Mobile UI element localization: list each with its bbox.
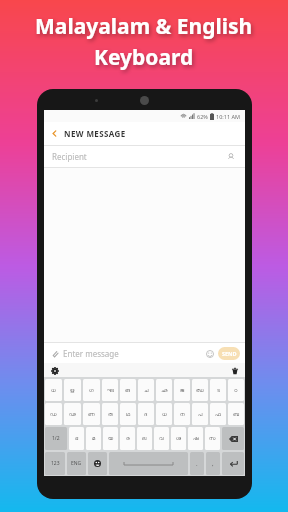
staticText: വ — [159, 436, 164, 441]
button[interactable]: ത — [102, 403, 118, 425]
staticText: ഠ — [234, 388, 238, 393]
button[interactable]: Attach — [49, 348, 60, 359]
staticText: 62% — [197, 113, 208, 120]
staticText: , — [212, 460, 214, 468]
staticText: ണ — [88, 412, 95, 417]
button[interactable]: ട — [210, 379, 226, 401]
staticText: ത — [108, 412, 113, 417]
button[interactable]: ന — [174, 403, 190, 425]
staticText: Enter message — [63, 348, 119, 359]
staticText: ഷ — [193, 436, 199, 441]
staticText: ദ — [144, 412, 148, 417]
staticText: ഋ — [70, 388, 75, 393]
staticText: ബ — [233, 412, 240, 417]
button[interactable]: ര — [120, 427, 135, 450]
button[interactable]: ഡ — [45, 403, 62, 425]
staticText: ല — [142, 436, 147, 441]
button[interactable]: ഘ — [102, 379, 118, 401]
staticText: ച — [144, 388, 149, 393]
staticText: ന — [180, 412, 185, 417]
staticText: ശ — [176, 436, 182, 441]
button[interactable]: Space — [109, 452, 188, 475]
button[interactable]: ണ — [83, 403, 100, 425]
button[interactable]: മ — [86, 427, 101, 450]
staticText: ENG — [71, 460, 82, 467]
button[interactable]: ധ — [156, 403, 172, 425]
button[interactable]: ഗ — [83, 379, 100, 401]
staticText: ഘ — [107, 388, 114, 393]
staticText: 123 — [51, 460, 60, 467]
button[interactable]: ബ — [228, 403, 244, 425]
button[interactable]: SEND — [218, 347, 240, 360]
staticText: . — [196, 460, 198, 468]
staticText: ഝ — [196, 388, 204, 393]
button[interactable]: ശ — [171, 427, 186, 450]
button[interactable]: Back — [44, 122, 64, 145]
button[interactable]: ENG — [67, 452, 86, 475]
button[interactable]: പ — [192, 403, 208, 425]
staticText: യ — [108, 436, 114, 441]
staticText: NEW MESSAGE — [64, 128, 126, 139]
staticText: ധ — [162, 412, 167, 417]
button[interactable]: സ — [205, 427, 220, 450]
button[interactable]: ഛ — [156, 379, 172, 401]
staticText: ജ — [180, 388, 185, 393]
button[interactable]: Recipient — [44, 146, 245, 167]
button[interactable]: 1/2 — [45, 427, 67, 450]
button[interactable]: ഋ — [64, 379, 81, 401]
button[interactable]: ച — [138, 379, 154, 401]
button[interactable]: ഫ — [210, 403, 226, 425]
button[interactable]: Choose contact — [225, 151, 237, 163]
button[interactable]: Delete — [229, 365, 240, 376]
staticText: ര — [126, 436, 130, 441]
staticText: Malayalam & English — [35, 12, 253, 41]
button[interactable]: ധ — [45, 379, 62, 401]
staticText: Recipient — [52, 151, 87, 162]
button[interactable]: ങ — [120, 379, 136, 401]
button[interactable]: ഢ — [64, 403, 81, 425]
button[interactable]: , — [206, 452, 220, 475]
staticText: 10:11 AM — [216, 113, 240, 120]
staticText: ഫ — [215, 412, 221, 417]
button[interactable]: Emoji — [204, 348, 215, 359]
button[interactable]: ഭ — [69, 427, 84, 450]
staticText: മ — [92, 436, 96, 441]
button[interactable]: ല — [137, 427, 152, 450]
button[interactable]: വ — [154, 427, 169, 450]
button[interactable]: ജ — [174, 379, 190, 401]
staticText: ഛ — [161, 388, 168, 393]
button[interactable]: ദ — [138, 403, 154, 425]
button[interactable]: ഷ — [188, 427, 203, 450]
staticText: ധ — [51, 388, 56, 393]
staticText: ഭ — [75, 436, 79, 441]
staticText: 1/2 — [52, 435, 60, 442]
staticText: ഗ — [89, 388, 94, 393]
staticText: ഥ — [126, 412, 131, 417]
staticText: സ — [209, 436, 216, 441]
button[interactable]: Settings — [49, 365, 60, 376]
button[interactable]: Emoji — [88, 452, 107, 475]
button[interactable]: ഥ — [120, 403, 136, 425]
button[interactable]: 123 — [45, 452, 65, 475]
staticText: SEND — [222, 350, 237, 357]
staticText: ഢ — [69, 412, 76, 417]
staticText: Keyboard — [94, 43, 194, 72]
button[interactable]: യ — [103, 427, 118, 450]
button[interactable]: ഠ — [228, 379, 244, 401]
button[interactable]: Backspace — [222, 427, 244, 450]
staticText: പ — [198, 412, 203, 417]
staticText: ങ — [125, 388, 131, 393]
staticText: ട — [217, 388, 220, 393]
button[interactable]: Enter — [222, 452, 244, 475]
button[interactable]: ഝ — [192, 379, 208, 401]
staticText: ഡ — [50, 412, 57, 417]
